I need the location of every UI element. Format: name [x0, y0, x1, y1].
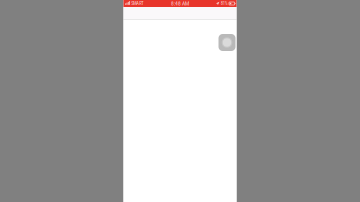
button[interactable]: AssistiveTouch [218, 34, 235, 51]
staticText: SMART [131, 1, 143, 6]
staticText: 8:48 AM [171, 0, 189, 7]
staticText: 81% [221, 1, 228, 6]
